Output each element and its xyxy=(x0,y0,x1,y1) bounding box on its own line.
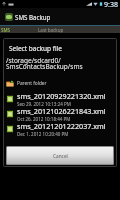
staticText: sms_20120929221320.xml xyxy=(17,91,106,101)
staticText: Last backup xyxy=(38,27,64,33)
button[interactable]: Cancel xyxy=(7,147,113,164)
button[interactable]: sms_20120929221320.xml xyxy=(4,91,116,106)
staticText: sms_20121026221843.xml xyxy=(17,106,106,116)
staticText: Select backup file xyxy=(9,44,62,53)
button[interactable]: SMS xyxy=(0,26,11,33)
staticText: sms_20121201222037.xml xyxy=(17,121,106,131)
button[interactable]: sms_20121201222037.xml xyxy=(4,121,116,136)
button[interactable]: Parent folder xyxy=(4,76,116,91)
staticText: /storage/sdcard0/ SmsContactsBackup/sms xyxy=(6,56,83,71)
staticText: 9:38 xyxy=(104,0,118,8)
staticText: Dec 1, 2012 10:20:40 PM xyxy=(17,131,69,136)
staticText: Oct 26, 2012 10:18:44 PM xyxy=(17,116,71,121)
staticText: Sep 29, 2012 10:13:24 PM xyxy=(17,101,71,106)
staticText: SMS Backup xyxy=(15,13,51,21)
staticText: Cancel xyxy=(53,153,68,159)
staticText: Parent folder xyxy=(17,80,47,87)
staticText: SMS xyxy=(1,27,11,33)
button[interactable]: sms_20121026221843.xml xyxy=(4,106,116,121)
button[interactable]: Last backup xyxy=(38,26,64,33)
